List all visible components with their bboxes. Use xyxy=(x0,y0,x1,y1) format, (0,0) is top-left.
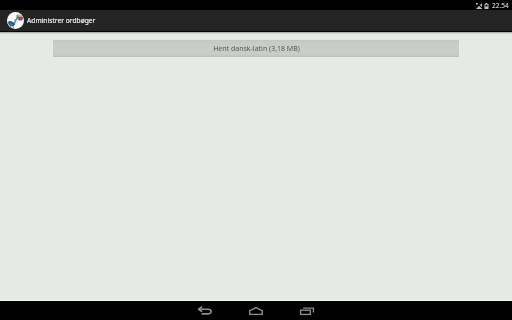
button[interactable]: Back xyxy=(186,301,224,320)
staticText: Administrer ordbøger xyxy=(27,16,96,25)
button[interactable]: Home xyxy=(237,301,275,320)
button[interactable]: Recent apps xyxy=(288,301,326,320)
staticText: 22.54 xyxy=(492,1,509,10)
button[interactable]: Aard Dictionary, navigate up xyxy=(7,12,24,29)
button[interactable]: Hent dansk-latin (3,18 MB) xyxy=(53,40,459,57)
staticText: Hent dansk-latin (3,18 MB) xyxy=(213,44,300,54)
